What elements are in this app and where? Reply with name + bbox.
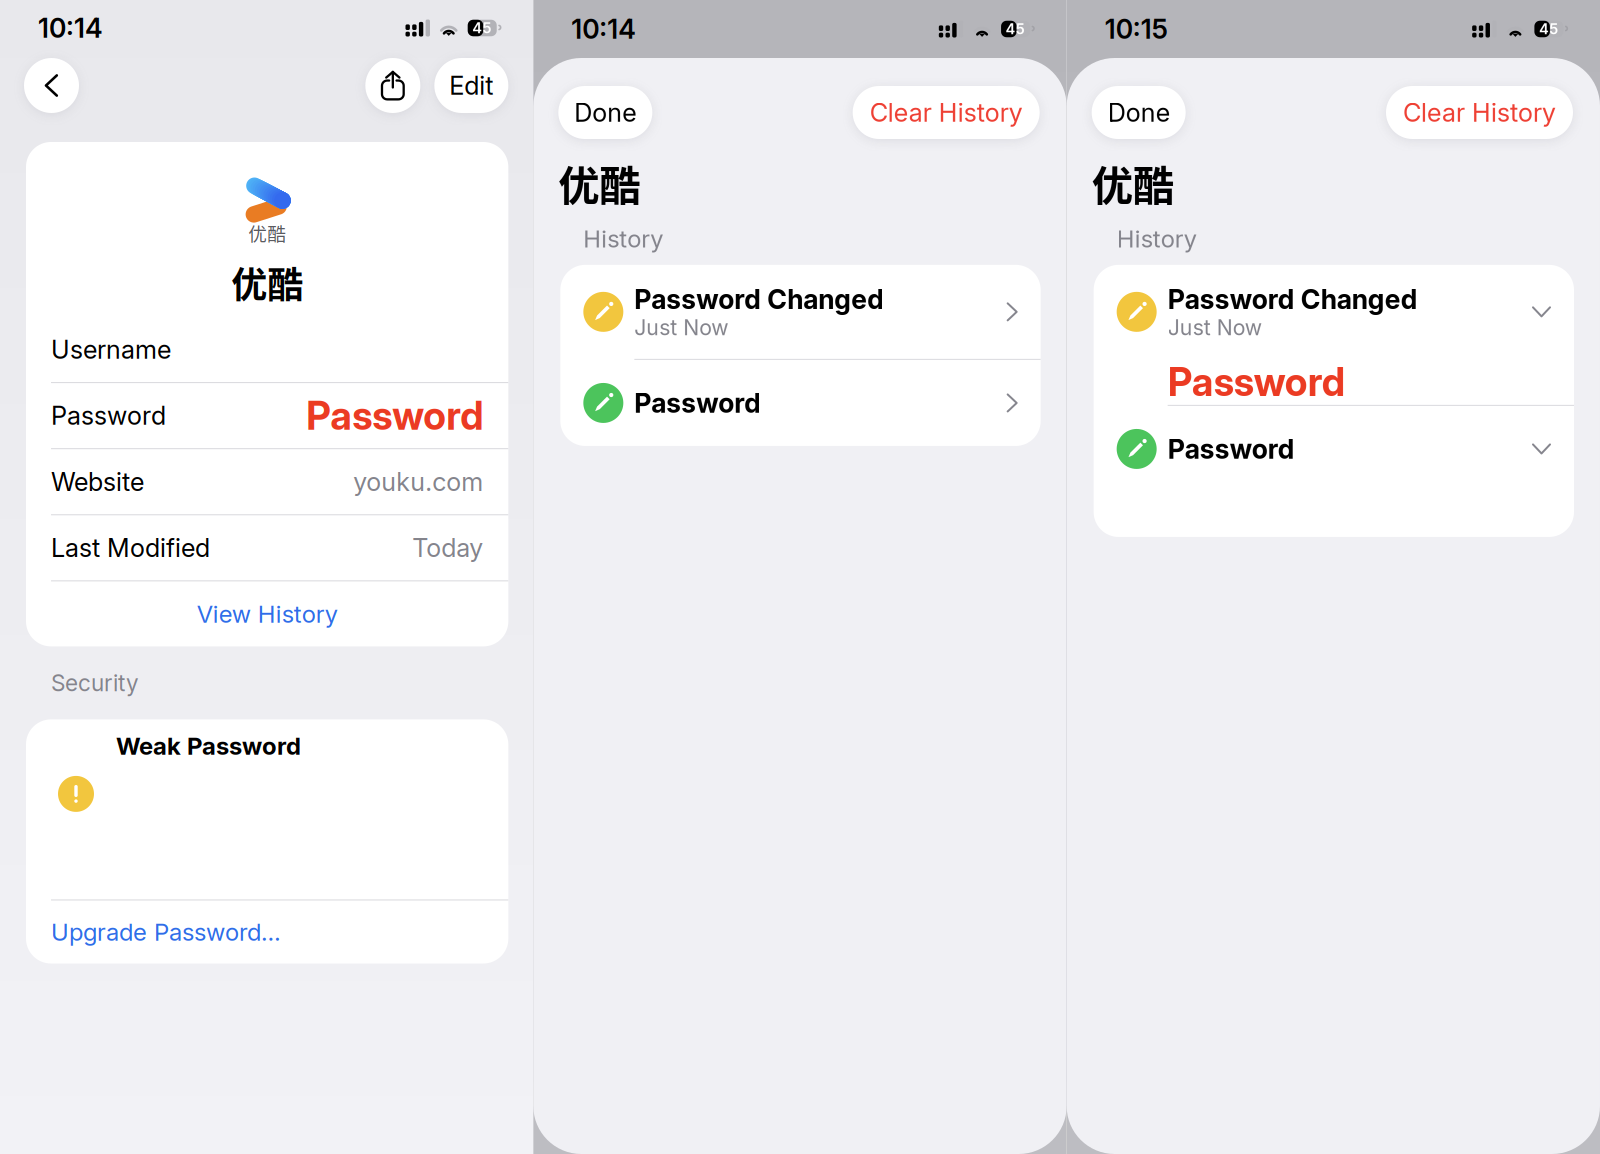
staticText: Edit [449,71,493,100]
staticText: Clear History [870,98,1023,127]
staticText: 10:15 [1105,13,1168,45]
button[interactable]: Edit [434,58,508,113]
staticText: Password Changed [1168,283,1418,315]
staticText: 10:14 [38,12,103,44]
staticText: 45 [1539,20,1558,38]
staticText: Last Modified [51,533,210,563]
staticText: Just Now [1168,315,1262,340]
button[interactable]: Clear History [1386,86,1573,139]
button[interactable]: Password Changed [1094,265,1574,359]
staticText: Today [412,533,483,563]
staticText: Just Now [634,315,728,340]
button[interactable]: View History [26,581,508,646]
staticText: Done [574,98,636,127]
staticText: Password [1168,433,1295,465]
staticText: 10:14 [571,13,636,45]
button[interactable]: Username [26,317,508,382]
staticText: Security [51,669,139,696]
button[interactable]: Done [558,86,652,139]
button[interactable]: Password [26,383,508,448]
staticText: History [1117,225,1197,253]
staticText: View History [197,600,338,628]
staticText: Website [51,467,144,497]
button[interactable]: Password Changed [560,265,1041,359]
staticText: Password [634,387,761,419]
staticText: Password [306,393,483,438]
button[interactable]: Back [24,58,79,113]
staticText: 45 [472,19,491,37]
staticText: youku.com [353,467,483,497]
staticText: 优酷 [248,219,286,246]
staticText: Password [51,401,166,431]
button[interactable]: Done [1092,86,1186,139]
button[interactable]: Website [26,449,508,514]
staticText: History [583,225,663,253]
staticText: Clear History [1403,98,1556,127]
staticText: Username [51,335,171,364]
staticText: 优酷 [1092,153,1174,213]
button[interactable]: Password [560,360,1041,446]
staticText: 45 [1006,20,1025,38]
button[interactable]: Clear History [853,86,1040,139]
staticText: 优酷 [558,153,640,213]
staticText: Upgrade Password… [51,918,281,946]
button[interactable]: Password [1094,406,1574,492]
staticText: Done [1108,98,1170,127]
staticText: Password Changed [634,283,884,315]
staticText: 优酷 [231,256,303,309]
button[interactable]: Upgrade Password… [26,900,508,963]
staticText: Password [1168,359,1345,405]
button[interactable]: Share [365,58,420,113]
staticText: Weak Password [116,732,301,760]
